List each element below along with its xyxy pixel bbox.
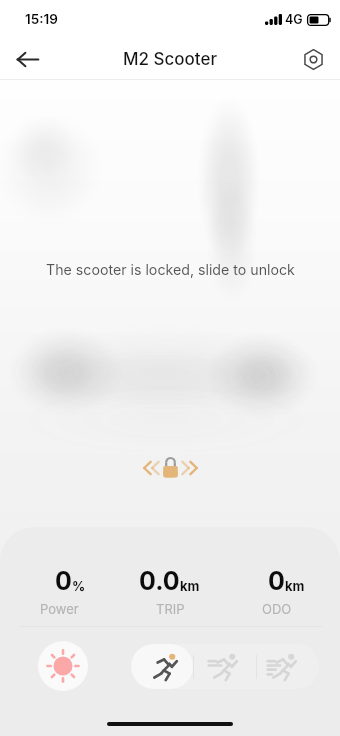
staticText: The scooter is locked, slide to unlock (46, 261, 295, 278)
staticText: Power (40, 601, 79, 617)
staticText: M2 Scooter (123, 49, 218, 70)
staticText: km (180, 578, 200, 594)
staticText: 15:19 (25, 11, 58, 27)
staticText: 0.0 (139, 566, 180, 596)
staticText: km (285, 578, 305, 594)
button[interactable]: Settings (292, 38, 334, 80)
staticText: ODO (262, 601, 292, 617)
button[interactable]: Back (6, 38, 48, 80)
staticText: 4G (285, 12, 303, 27)
button[interactable]: Speed mode 2 (194, 644, 256, 689)
button[interactable]: Headlight (38, 641, 88, 691)
staticText: 0 (55, 566, 72, 596)
button[interactable]: Slide to unlock (142, 456, 199, 478)
button[interactable]: Speed mode 1 (131, 644, 193, 689)
staticText: 0 (268, 566, 285, 596)
button[interactable]: Speed mode 3 (257, 644, 319, 689)
staticText: TRIP (156, 601, 185, 617)
staticText: % (72, 578, 86, 594)
